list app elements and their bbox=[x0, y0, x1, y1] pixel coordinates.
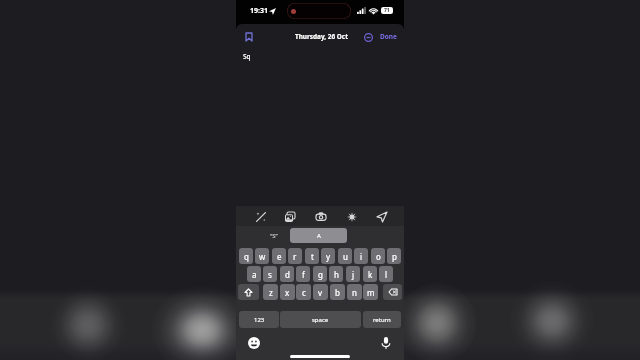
staticText: i bbox=[360, 251, 363, 262]
button[interactable]: r bbox=[288, 248, 302, 264]
staticText: b bbox=[335, 287, 340, 298]
button[interactable]: j bbox=[346, 266, 360, 282]
button[interactable]: Backspace bbox=[383, 284, 402, 300]
staticText: t bbox=[311, 251, 314, 262]
button[interactable]: u bbox=[338, 248, 352, 264]
button[interactable]: e bbox=[272, 248, 286, 264]
button[interactable]: c bbox=[296, 284, 311, 300]
button[interactable]: Shift bbox=[238, 284, 259, 300]
staticText: 71 bbox=[384, 7, 390, 14]
button[interactable]: More options bbox=[362, 31, 374, 43]
staticText: “S” bbox=[270, 232, 278, 240]
button[interactable]: Dictate bbox=[379, 336, 393, 350]
button[interactable]: q bbox=[239, 248, 253, 264]
staticText: space bbox=[312, 316, 329, 324]
staticText: A bbox=[317, 232, 321, 240]
button[interactable]: s bbox=[263, 266, 277, 282]
button[interactable]: Bookmark bbox=[242, 30, 255, 43]
button[interactable]: w bbox=[255, 248, 269, 264]
button[interactable]: “S” bbox=[254, 230, 294, 242]
button[interactable]: A bbox=[290, 228, 347, 243]
staticText: r bbox=[293, 251, 297, 262]
button[interactable]: Done bbox=[379, 30, 398, 43]
staticText: l bbox=[385, 269, 388, 280]
button[interactable]: d bbox=[280, 266, 294, 282]
staticText: n bbox=[352, 287, 357, 298]
button[interactable]: k bbox=[363, 266, 377, 282]
staticText: e bbox=[277, 251, 282, 262]
button[interactable]: i bbox=[354, 248, 368, 264]
button[interactable]: f bbox=[296, 266, 310, 282]
staticText: Thursday, 26 Oct bbox=[295, 32, 348, 41]
button[interactable]: z bbox=[263, 284, 278, 300]
staticText: s bbox=[268, 269, 272, 280]
staticText: w bbox=[259, 251, 266, 262]
button[interactable]: Space bbox=[280, 311, 361, 328]
staticText: f bbox=[302, 269, 305, 280]
button[interactable]: Markup bbox=[252, 208, 269, 225]
staticText: y bbox=[326, 251, 331, 262]
staticText: 123 bbox=[254, 316, 265, 324]
button[interactable]: Scan bbox=[343, 208, 360, 225]
button[interactable]: b bbox=[330, 284, 345, 300]
staticText: x bbox=[285, 287, 290, 298]
button[interactable]: t bbox=[305, 248, 319, 264]
button[interactable]: o bbox=[371, 248, 385, 264]
button[interactable]: Return bbox=[363, 311, 401, 328]
button[interactable]: h bbox=[329, 266, 343, 282]
button[interactable]: m bbox=[363, 284, 378, 300]
staticText: g bbox=[318, 269, 323, 280]
button[interactable]: v bbox=[313, 284, 328, 300]
staticText: o bbox=[376, 251, 381, 262]
staticText: 19:31 bbox=[250, 6, 268, 16]
button[interactable]: a bbox=[247, 266, 261, 282]
button[interactable]: x bbox=[280, 284, 295, 300]
staticText: j bbox=[352, 269, 355, 280]
button[interactable]: y bbox=[321, 248, 335, 264]
button[interactable]: Numbers bbox=[239, 311, 279, 328]
staticText: d bbox=[285, 269, 290, 280]
staticText: Done bbox=[380, 32, 397, 41]
staticText: p bbox=[392, 251, 397, 262]
staticText: k bbox=[368, 269, 373, 280]
button[interactable]: p bbox=[387, 248, 401, 264]
button[interactable]: l bbox=[379, 266, 393, 282]
staticText: Sq bbox=[243, 52, 251, 61]
staticText: u bbox=[343, 251, 348, 262]
button[interactable]: Send bbox=[373, 208, 390, 225]
staticText: a bbox=[252, 269, 257, 280]
staticText: z bbox=[269, 287, 273, 298]
staticText: v bbox=[318, 287, 323, 298]
staticText: return bbox=[373, 316, 391, 324]
button[interactable]: g bbox=[313, 266, 327, 282]
staticText: m bbox=[367, 287, 375, 298]
staticText: q bbox=[244, 251, 249, 262]
staticText: h bbox=[334, 269, 339, 280]
button[interactable]: Camera bbox=[312, 208, 329, 225]
button[interactable]: Emoji bbox=[247, 336, 261, 350]
staticText: c bbox=[302, 287, 306, 298]
button[interactable]: n bbox=[347, 284, 362, 300]
button[interactable]: Photos bbox=[281, 208, 298, 225]
